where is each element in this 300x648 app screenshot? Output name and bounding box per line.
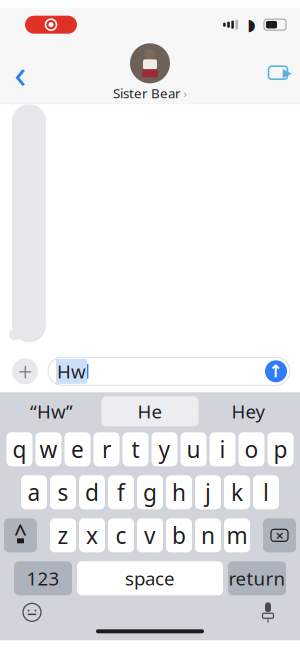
button[interactable]: f bbox=[108, 475, 134, 509]
button[interactable]: c bbox=[108, 518, 134, 552]
staticText: b bbox=[172, 520, 186, 550]
button[interactable]: “Hw” bbox=[1, 396, 101, 426]
button[interactable]: Shift bbox=[4, 518, 37, 552]
staticText: Sister Bear bbox=[113, 84, 181, 102]
button[interactable]: Emoji bbox=[12, 597, 52, 627]
staticText: a bbox=[27, 477, 40, 507]
button[interactable]: b bbox=[166, 518, 192, 552]
staticText: m bbox=[226, 520, 247, 550]
button[interactable]: t bbox=[122, 432, 148, 466]
staticText: t bbox=[131, 434, 139, 464]
button[interactable]: He bbox=[101, 396, 198, 426]
button[interactable]: Hw bbox=[48, 357, 290, 385]
button[interactable]: i bbox=[209, 432, 235, 466]
button[interactable]: r bbox=[93, 432, 119, 466]
button[interactable]: v bbox=[137, 518, 163, 552]
button[interactable]: l bbox=[253, 475, 279, 509]
button[interactable]: h bbox=[166, 475, 192, 509]
staticText: y bbox=[158, 434, 170, 464]
staticText: k bbox=[231, 477, 243, 507]
staticText: + bbox=[18, 354, 32, 388]
staticText: l bbox=[263, 477, 269, 507]
staticText: i bbox=[219, 434, 225, 464]
staticText: v bbox=[144, 520, 156, 550]
staticText: c bbox=[115, 520, 126, 550]
button[interactable]: j bbox=[195, 475, 221, 509]
button[interactable]: space bbox=[77, 561, 223, 595]
staticText: ▶ bbox=[282, 66, 291, 79]
staticText: h bbox=[172, 477, 186, 507]
staticText: › bbox=[183, 84, 187, 102]
button[interactable]: d bbox=[79, 475, 105, 509]
staticText: He bbox=[137, 399, 162, 424]
staticText: ↑ bbox=[268, 361, 283, 381]
staticText: 123 bbox=[26, 566, 59, 591]
button[interactable]: p bbox=[267, 432, 293, 466]
button[interactable]: 123 bbox=[14, 561, 72, 595]
staticText: g bbox=[143, 477, 157, 507]
staticText: o bbox=[244, 434, 258, 464]
staticText: ‹ bbox=[14, 46, 26, 99]
staticText: p bbox=[273, 434, 287, 464]
staticText: z bbox=[57, 520, 68, 550]
button[interactable]: Delete bbox=[263, 518, 296, 552]
staticText: f bbox=[117, 477, 125, 507]
staticText: × bbox=[275, 526, 283, 545]
button[interactable]: Sister Bear bbox=[113, 43, 187, 102]
button[interactable]: x bbox=[79, 518, 105, 552]
button[interactable]: m bbox=[224, 518, 250, 552]
button[interactable]: n bbox=[195, 518, 221, 552]
staticText: ◗ bbox=[247, 16, 255, 34]
button[interactable]: o bbox=[238, 432, 264, 466]
button[interactable]: Add attachment bbox=[10, 356, 40, 386]
button[interactable]: g bbox=[137, 475, 163, 509]
button[interactable]: Back bbox=[0, 51, 40, 95]
staticText: “Hw” bbox=[30, 399, 73, 424]
button[interactable]: q bbox=[6, 432, 32, 466]
staticText: s bbox=[57, 477, 68, 507]
staticText: j bbox=[205, 477, 211, 507]
staticText: Hw bbox=[57, 359, 86, 384]
staticText: e bbox=[71, 434, 84, 464]
button[interactable]: y bbox=[151, 432, 177, 466]
staticText: return bbox=[228, 566, 285, 591]
staticText: q bbox=[12, 434, 26, 464]
button[interactable]: e bbox=[64, 432, 90, 466]
button[interactable]: k bbox=[224, 475, 250, 509]
staticText: space bbox=[125, 566, 175, 591]
button[interactable]: Dictation bbox=[248, 597, 288, 627]
staticText: ^ bbox=[14, 518, 27, 548]
button[interactable]: z bbox=[50, 518, 76, 552]
staticText: w bbox=[39, 434, 57, 464]
button[interactable]: s bbox=[50, 475, 76, 509]
button[interactable]: Hey bbox=[198, 396, 298, 426]
staticText: n bbox=[201, 520, 215, 550]
staticText: u bbox=[186, 434, 200, 464]
staticText: x bbox=[86, 520, 98, 550]
staticText: r bbox=[102, 434, 111, 464]
button[interactable]: a bbox=[21, 475, 47, 509]
button[interactable]: u bbox=[180, 432, 206, 466]
button[interactable]: FaceTime bbox=[256, 51, 300, 95]
staticText: d bbox=[85, 477, 99, 507]
button[interactable]: w bbox=[35, 432, 61, 466]
staticText: Hey bbox=[231, 399, 265, 424]
button[interactable]: return bbox=[228, 561, 286, 595]
